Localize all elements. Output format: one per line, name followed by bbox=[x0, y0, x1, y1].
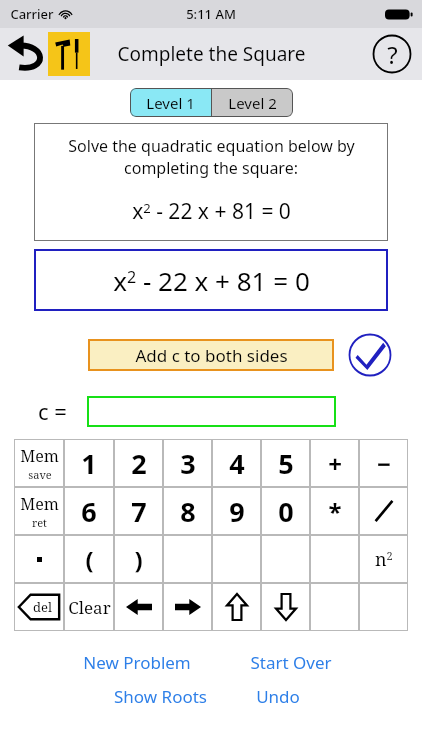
button[interactable]: n2 bbox=[359, 535, 408, 583]
button[interactable] bbox=[310, 583, 359, 631]
button[interactable]: 5 bbox=[261, 439, 310, 487]
button[interactable] bbox=[359, 583, 408, 631]
button[interactable]: 4 bbox=[212, 439, 261, 487]
staticText: 8 bbox=[180, 493, 196, 530]
button[interactable] bbox=[212, 583, 261, 631]
button[interactable]: ) bbox=[114, 535, 163, 583]
button[interactable]: New Problem bbox=[83, 651, 191, 674]
staticText: − bbox=[377, 447, 391, 480]
staticText: New Problem bbox=[83, 651, 191, 674]
button[interactable]: Back bbox=[6, 33, 50, 75]
button[interactable] bbox=[87, 396, 336, 427]
staticText: 9 bbox=[229, 493, 245, 530]
button[interactable]: 8 bbox=[163, 487, 212, 535]
staticText: Add c to both sides bbox=[135, 344, 288, 367]
button[interactable]: 1 bbox=[64, 439, 114, 487]
button[interactable] bbox=[212, 535, 261, 583]
button[interactable] bbox=[261, 583, 310, 631]
staticText: Clear bbox=[68, 596, 111, 619]
button[interactable]: Level 2 bbox=[212, 88, 293, 117]
staticText: 1 bbox=[81, 445, 97, 482]
staticText: completing the square: bbox=[124, 157, 298, 179]
button[interactable] bbox=[163, 535, 212, 583]
staticText: x2 - 22 x + 81 = 0 bbox=[113, 263, 310, 298]
staticText: Level 1 bbox=[146, 93, 195, 113]
staticText: 6 bbox=[81, 493, 97, 530]
staticText: Complete the Square bbox=[117, 41, 306, 67]
button[interactable]: Check answer bbox=[348, 333, 392, 377]
button[interactable]: Mem bbox=[14, 487, 64, 535]
button[interactable]: 2 bbox=[114, 439, 163, 487]
button[interactable]: Add c to both sides bbox=[88, 339, 334, 371]
button[interactable]: Tools bbox=[48, 32, 90, 76]
staticText: Show Roots bbox=[114, 685, 207, 708]
button[interactable]: 7 bbox=[114, 487, 163, 535]
staticText: + bbox=[328, 447, 342, 480]
staticText: ret bbox=[32, 515, 47, 530]
button[interactable] bbox=[114, 583, 163, 631]
staticText: x2 - 22 x + 81 = 0 bbox=[132, 197, 291, 226]
button[interactable] bbox=[14, 535, 64, 583]
button[interactable]: Start Over bbox=[250, 651, 332, 674]
staticText: 4 bbox=[229, 445, 245, 482]
staticText: c = bbox=[38, 396, 67, 426]
staticText: 3 bbox=[180, 445, 196, 482]
staticText: save bbox=[28, 467, 52, 482]
button[interactable]: Clear bbox=[64, 583, 114, 631]
button[interactable] bbox=[261, 535, 310, 583]
button[interactable]: + bbox=[310, 439, 359, 487]
button[interactable]: del bbox=[14, 583, 64, 631]
button[interactable]: 0 bbox=[261, 487, 310, 535]
button[interactable]: * bbox=[310, 487, 359, 535]
button[interactable]: − bbox=[359, 439, 408, 487]
button[interactable]: Mem bbox=[14, 439, 64, 487]
staticText: Solve the quadratic equation below by bbox=[68, 135, 355, 157]
button[interactable]: 9 bbox=[212, 487, 261, 535]
staticText: 0 bbox=[278, 493, 294, 530]
staticText: Carrier bbox=[10, 5, 54, 23]
staticText: Level 2 bbox=[228, 93, 277, 113]
button[interactable]: 6 bbox=[64, 487, 114, 535]
button[interactable] bbox=[310, 535, 359, 583]
staticText: 2 bbox=[131, 445, 147, 482]
staticText: n2 bbox=[375, 547, 393, 572]
staticText: ( bbox=[85, 543, 94, 576]
button[interactable]: Help bbox=[372, 34, 412, 74]
staticText: Mem bbox=[20, 445, 59, 467]
button[interactable] bbox=[163, 583, 212, 631]
staticText: Undo bbox=[256, 685, 300, 708]
staticText: Start Over bbox=[250, 651, 332, 674]
staticText: 5:11 AM bbox=[186, 5, 236, 23]
button[interactable]: 3 bbox=[163, 439, 212, 487]
staticText: ) bbox=[134, 543, 143, 576]
button[interactable]: Show Roots bbox=[114, 685, 207, 708]
staticText: 7 bbox=[131, 493, 147, 530]
button[interactable] bbox=[359, 487, 408, 535]
staticText: ? bbox=[387, 38, 398, 71]
staticText: 5 bbox=[278, 445, 294, 482]
button[interactable]: Level 1 bbox=[130, 88, 211, 117]
button[interactable]: Undo bbox=[256, 685, 300, 708]
staticText: * bbox=[328, 495, 342, 528]
button[interactable]: ( bbox=[64, 535, 114, 583]
staticText: Mem bbox=[20, 493, 59, 515]
staticText: del bbox=[33, 598, 52, 616]
